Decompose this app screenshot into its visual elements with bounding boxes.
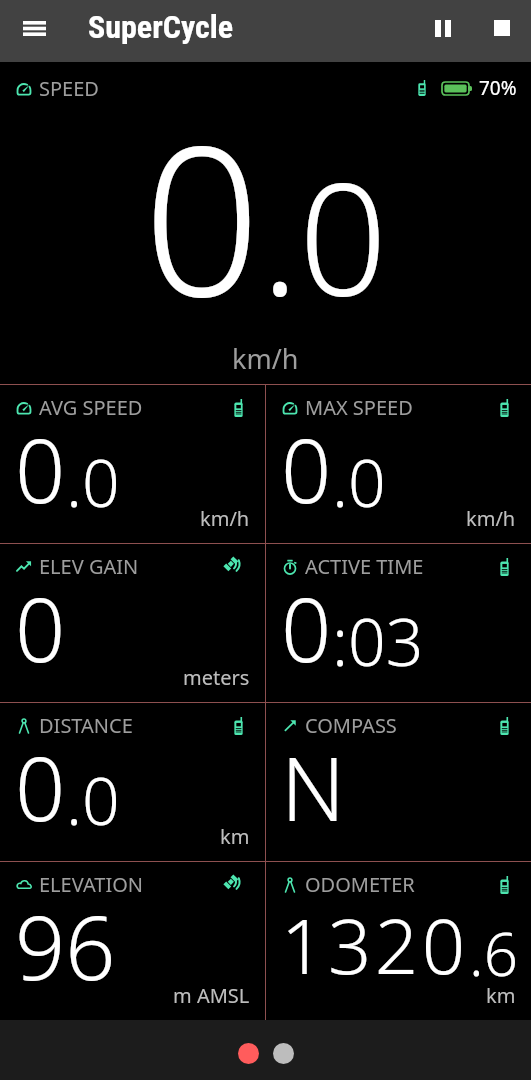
staticText: 0: [15, 568, 66, 688]
staticText: SuperCycle: [88, 8, 234, 46]
staticText: .0: [261, 129, 388, 340]
staticText: DISTANCE: [39, 712, 133, 739]
staticText: MAX SPEED: [305, 394, 413, 421]
button[interactable]: Stop: [471, 0, 531, 62]
staticText: 0: [281, 409, 332, 529]
button[interactable]: ELEVATION: [0, 862, 265, 1020]
staticText: m AMSL: [173, 982, 250, 1009]
staticText: .0: [66, 436, 120, 526]
button[interactable]: ODOMETER: [266, 862, 531, 1020]
staticText: 0: [15, 409, 66, 529]
staticText: .0: [332, 436, 386, 526]
staticText: ACTIVE TIME: [305, 553, 424, 580]
staticText: km: [220, 823, 250, 850]
staticText: COMPASS: [305, 712, 397, 739]
staticText: 96: [15, 886, 116, 1006]
staticText: km: [486, 982, 516, 1009]
button[interactable]: Pause: [409, 0, 471, 62]
staticText: ELEVATION: [39, 871, 144, 898]
staticText: :03: [332, 595, 424, 685]
staticText: 0: [281, 568, 332, 688]
button[interactable]: Page 2: [273, 1043, 294, 1064]
staticText: 0: [15, 727, 66, 847]
staticText: N: [281, 727, 346, 847]
button[interactable]: Menu: [0, 0, 68, 62]
staticText: meters: [183, 664, 250, 691]
button[interactable]: ELEV GAIN: [0, 544, 265, 702]
staticText: 70%: [479, 75, 517, 101]
staticText: .0: [66, 754, 120, 844]
staticText: SPEED: [39, 75, 99, 102]
button[interactable]: ACTIVE TIME: [266, 544, 531, 702]
staticText: ELEV GAIN: [39, 553, 139, 580]
button[interactable]: MAX SPEED: [266, 385, 531, 543]
staticText: AVG SPEED: [39, 394, 143, 421]
button[interactable]: DISTANCE: [0, 703, 265, 861]
staticText: km/h: [200, 505, 250, 532]
staticText: 1320: [281, 893, 469, 997]
button[interactable]: COMPASS: [266, 703, 531, 861]
staticText: .6: [469, 912, 518, 994]
staticText: km/h: [232, 340, 299, 377]
button[interactable]: Page 1: [238, 1043, 259, 1064]
staticText: km/h: [466, 505, 516, 532]
staticText: 0: [143, 76, 261, 346]
staticText: ODOMETER: [305, 871, 415, 898]
button[interactable]: AVG SPEED: [0, 385, 265, 543]
